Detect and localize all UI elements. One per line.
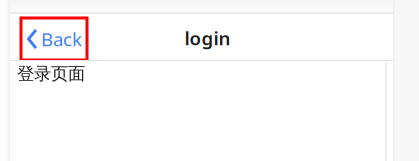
staticText: Back [41, 27, 82, 51]
staticText: 登录页面 [17, 63, 85, 84]
button[interactable]: Back [21, 18, 87, 60]
staticText: login [184, 26, 230, 50]
